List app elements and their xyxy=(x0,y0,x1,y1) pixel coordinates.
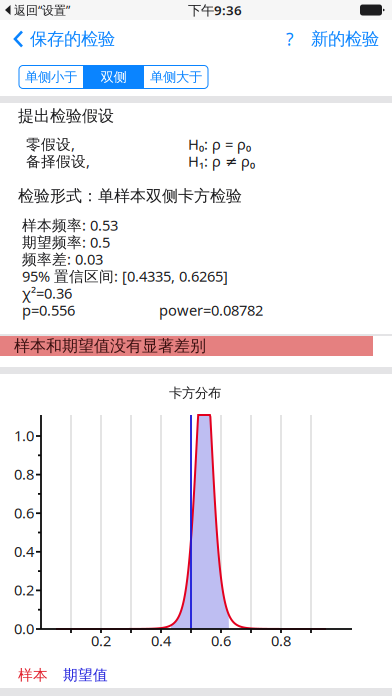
staticText: 新的检验 xyxy=(311,28,379,50)
staticText: H₀: ρ = ρ₀ xyxy=(188,134,251,154)
staticText: 样本和期望值没有显著差别 xyxy=(14,336,206,356)
staticText: 0.8 xyxy=(14,464,34,484)
staticText: 单侧大于 xyxy=(150,69,202,85)
staticText: 95% 置信区间: [0.4335, 0.6265] xyxy=(22,266,228,286)
button[interactable]: 新的检验 xyxy=(303,21,392,57)
staticText: 检验形式：单样本双侧卡方检验 xyxy=(18,186,242,206)
staticText: power=0.08782 xyxy=(159,300,263,320)
staticText: 返回“设置” xyxy=(14,2,70,18)
staticText: 下午9:36 xyxy=(188,1,242,19)
staticText: 单侧小于 xyxy=(25,69,77,85)
staticText: 0.8 xyxy=(271,631,291,650)
staticText: χ²=0.36 xyxy=(22,283,72,303)
staticText: 期望频率: 0.5 xyxy=(22,232,110,252)
staticText: 1.0 xyxy=(14,426,34,445)
staticText: 零假设, xyxy=(26,134,75,154)
staticText: 样本频率: 0.53 xyxy=(22,215,118,235)
staticText: 0.4 xyxy=(14,542,34,561)
staticText: 0.2 xyxy=(14,580,34,600)
staticText: 频率差: 0.03 xyxy=(22,249,103,269)
staticText: 0.6 xyxy=(14,503,34,522)
button[interactable]: ? xyxy=(277,20,303,57)
staticText: 双侧 xyxy=(100,69,126,85)
staticText: H₁: ρ ≠ ρ₀ xyxy=(188,151,255,171)
staticText: 0.4 xyxy=(151,631,171,650)
staticText: 0.2 xyxy=(91,631,111,650)
staticText: 样本 xyxy=(18,666,48,684)
staticText: 提出检验假设 xyxy=(18,106,114,126)
staticText: ? xyxy=(286,27,294,50)
staticText: p=0.556 xyxy=(22,300,75,320)
staticText: 卡方分布 xyxy=(169,385,221,401)
button[interactable]: 双侧 xyxy=(84,65,143,88)
staticText: 期望值 xyxy=(63,666,108,684)
staticText: 备择假设, xyxy=(26,151,90,171)
button[interactable]: 单侧小于 xyxy=(19,65,83,88)
staticText: 保存的检验 xyxy=(30,28,115,50)
button[interactable]: 返回“设置” xyxy=(0,2,70,18)
staticText: 0.0 xyxy=(14,619,34,638)
staticText: 0.6 xyxy=(211,631,231,650)
button[interactable]: 保存的检验 xyxy=(0,21,115,57)
button[interactable]: 单侧大于 xyxy=(144,65,208,88)
